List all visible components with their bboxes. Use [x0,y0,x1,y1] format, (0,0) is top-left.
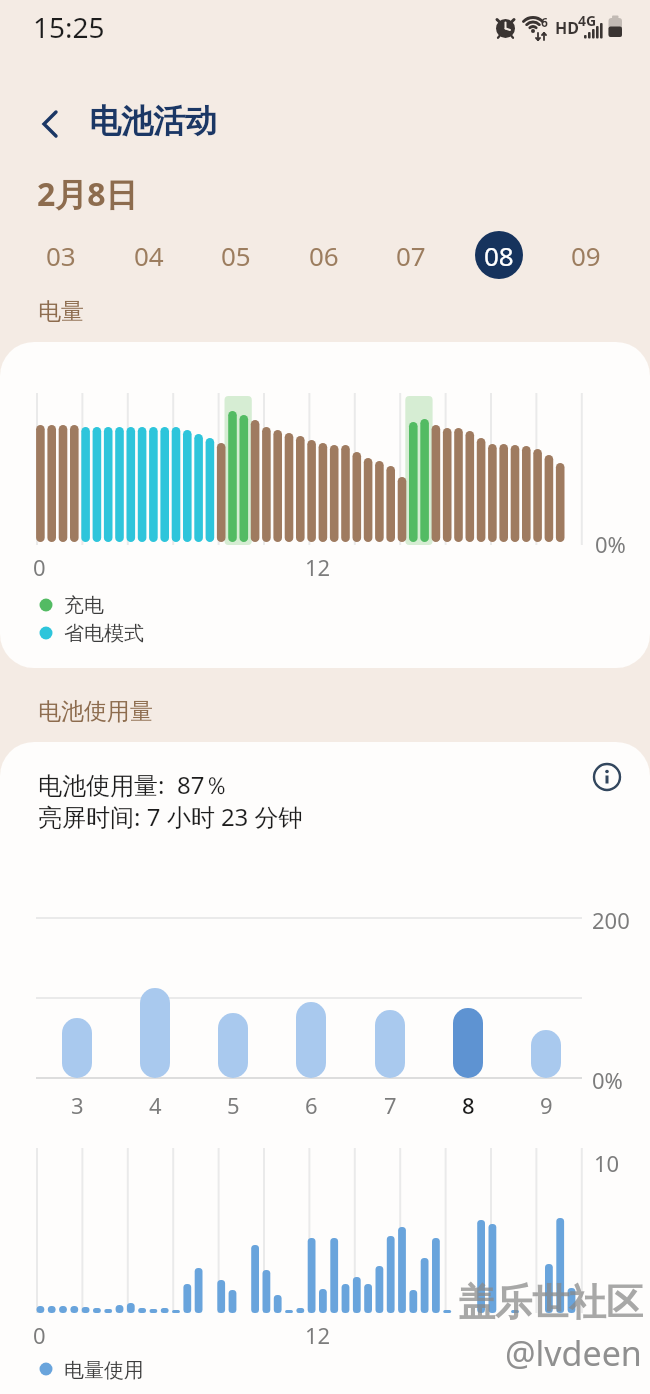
staticText: 亮屏时间: 7 小时 23 分钟 [38,800,303,833]
staticText: 10 [594,1148,620,1178]
staticText: 8 [462,1090,475,1120]
staticText: 06 [309,238,339,273]
staticText: 电量 [38,297,84,326]
staticText: 6 [541,14,548,30]
staticText: 3 [71,1090,84,1120]
staticText: 5 [227,1090,240,1120]
staticText: 0% [595,529,626,559]
button[interactable] [26,100,74,148]
staticText: 省电模式 [64,621,144,646]
staticText: 2月8日 [37,172,138,216]
staticText: 12 [305,1320,331,1350]
staticText: 03 [46,238,76,273]
staticText: 05 [221,238,251,273]
button[interactable]: 05 [212,231,260,279]
staticText: 7 [384,1090,397,1120]
button[interactable]: 09 [562,231,610,279]
staticText: 电池使用量: 87％ [38,768,229,801]
staticText: 200 [592,905,630,935]
button[interactable]: 08 [475,231,523,279]
staticText: 4 [149,1090,162,1120]
button[interactable] [586,756,628,798]
staticText: 12 [305,552,331,582]
staticText: 07 [396,238,426,273]
staticText: @lvdeen [505,1330,642,1376]
staticText: 电池使用量 [38,697,153,726]
staticText: 0 [33,552,46,582]
staticText: 6 [305,1090,318,1120]
staticText: 电池活动 [89,101,217,141]
button[interactable]: 06 [300,231,348,279]
staticText: 0% [592,1065,623,1095]
staticText: 充电 [64,593,104,618]
staticText: 15:25 [33,8,105,46]
staticText: 盖乐世社区 [458,1279,643,1326]
staticText: 0 [33,1320,46,1350]
staticText: 04 [134,238,164,273]
button[interactable]: 07 [387,231,435,279]
staticText: 电量使用 [64,1358,144,1383]
staticText: 08 [484,238,514,273]
staticText: 09 [571,238,601,273]
staticText: 9 [540,1090,553,1120]
button[interactable]: 03 [37,231,85,279]
staticText: 4G [578,11,597,30]
button[interactable]: 04 [125,231,173,279]
staticText: HD [555,17,579,39]
